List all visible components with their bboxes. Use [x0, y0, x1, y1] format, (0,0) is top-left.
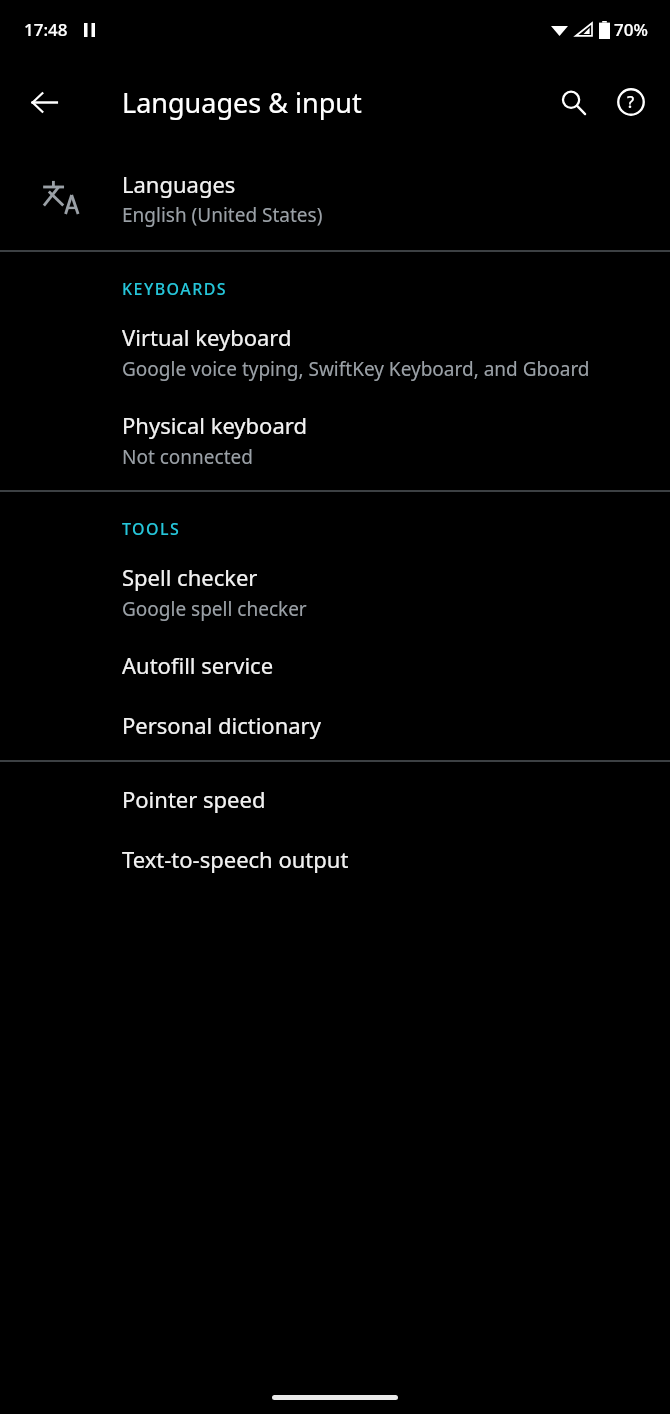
button[interactable]: Personal dictionary [0, 710, 670, 740]
staticText: Google voice typing, SwiftKey Keyboard, … [122, 356, 590, 382]
staticText: KEYBOARDS [122, 278, 228, 300]
staticText: Spell checker [122, 562, 258, 592]
staticText: Autofill service [122, 650, 274, 680]
staticText: ? [627, 91, 635, 113]
button[interactable]: Search [544, 73, 602, 131]
staticText: 17:48 [24, 18, 68, 41]
staticText: Physical keyboard [122, 410, 307, 440]
button[interactable]: Virtual keyboard [0, 322, 670, 382]
button[interactable]: Autofill service [0, 650, 670, 680]
staticText: 70% [614, 18, 648, 41]
staticText: Languages & input [122, 84, 362, 121]
staticText: Pointer speed [122, 784, 266, 814]
button[interactable]: Physical keyboard [0, 410, 670, 470]
button[interactable]: Pointer speed [0, 784, 670, 814]
staticText: TOOLS [122, 518, 181, 540]
button[interactable]: Spell checker [0, 562, 670, 622]
staticText: Personal dictionary [122, 710, 321, 740]
staticText: Virtual keyboard [122, 322, 292, 352]
staticText: Google spell checker [122, 596, 307, 622]
button[interactable]: Help [602, 73, 660, 131]
staticText: English (United States) [122, 202, 323, 228]
staticText: Text-to-speech output [122, 844, 349, 874]
button[interactable]: Languages [0, 146, 670, 250]
button[interactable]: Back [14, 72, 74, 132]
staticText: Not connected [122, 444, 253, 470]
staticText: Languages [122, 169, 236, 199]
button[interactable]: Text-to-speech output [0, 844, 670, 874]
